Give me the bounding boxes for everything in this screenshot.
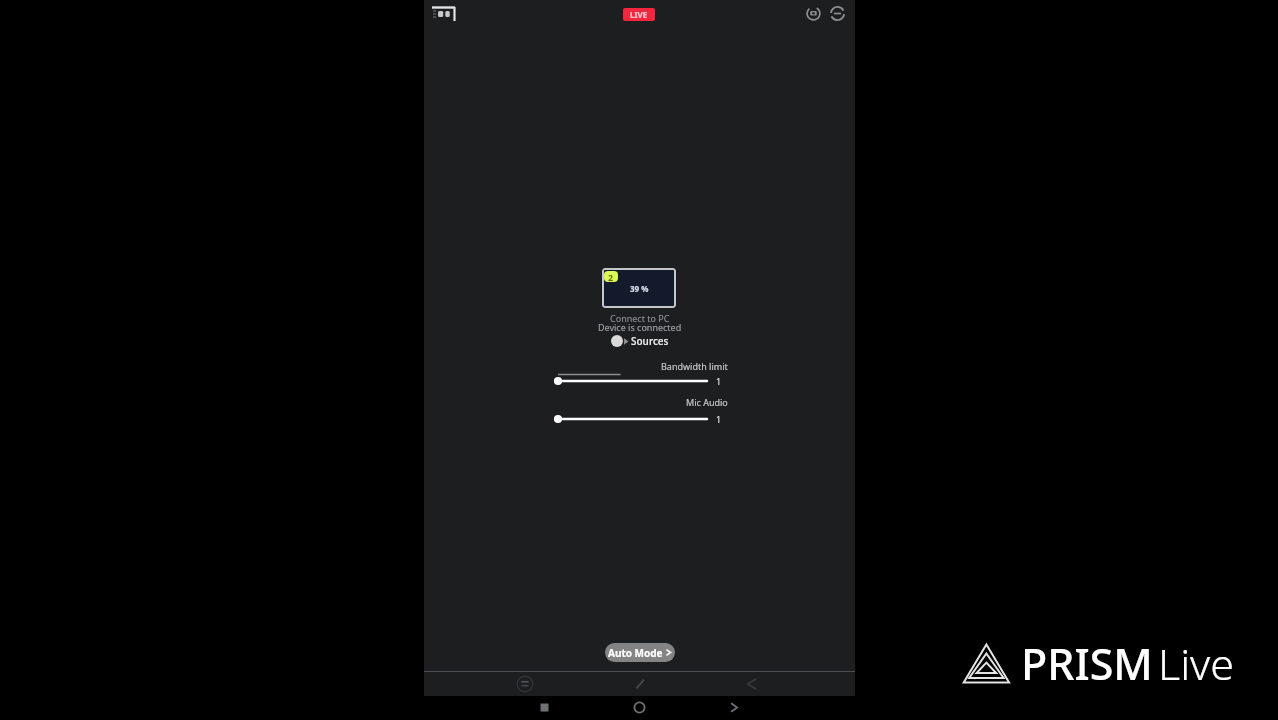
staticText: 2 xyxy=(608,271,614,282)
button[interactable]: Flip camera xyxy=(806,6,821,21)
staticText: Auto Mode xyxy=(608,646,663,660)
staticText: Mic Audio xyxy=(686,396,728,408)
staticText: 1 xyxy=(716,413,722,425)
staticText: Device is connected xyxy=(598,321,682,333)
staticText: Connect to PC xyxy=(610,312,670,324)
staticText: Sources xyxy=(631,334,669,348)
button[interactable]: Auto Mode xyxy=(605,643,675,662)
button[interactable]: Sources xyxy=(611,334,669,348)
button[interactable]: Settings xyxy=(516,675,534,693)
staticText: Bandwidth limit xyxy=(661,360,728,372)
button[interactable]: Recents xyxy=(538,701,551,714)
button[interactable]: Back xyxy=(727,701,740,714)
button[interactable]: 2 xyxy=(602,268,676,308)
staticText: 39 % xyxy=(630,283,649,294)
button[interactable]: Mic Audio xyxy=(554,413,711,425)
button[interactable]: Bandwidth limit xyxy=(554,375,711,387)
button[interactable]: Rotate screen xyxy=(830,6,845,21)
button[interactable]: Home xyxy=(633,701,646,714)
other: PRISM Live xyxy=(960,640,1012,688)
staticText: Live xyxy=(1158,634,1235,693)
staticText: 1 xyxy=(716,375,722,387)
button[interactable]: Captions xyxy=(431,5,457,23)
button[interactable]: Rewind xyxy=(743,675,761,693)
staticText: LIVE xyxy=(630,9,648,20)
staticText: PRISM xyxy=(1021,634,1153,693)
button[interactable]: Draw xyxy=(631,675,649,693)
button[interactable]: LIVE xyxy=(623,8,655,21)
